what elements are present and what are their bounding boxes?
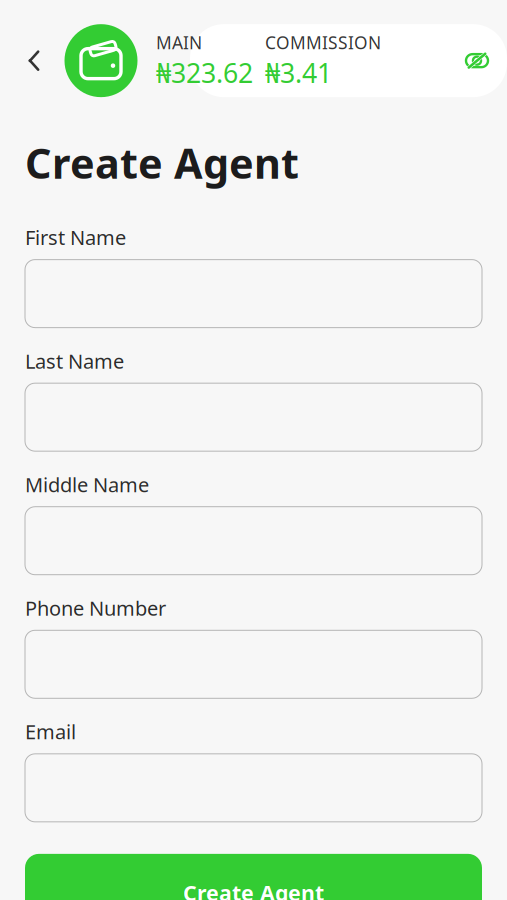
button[interactable]: Middle Name bbox=[25, 507, 482, 575]
staticText: First Name bbox=[25, 224, 126, 251]
staticText: Create Agent bbox=[25, 135, 299, 190]
staticText: MAIN bbox=[156, 31, 202, 54]
button[interactable]: Create Agent bbox=[25, 854, 482, 900]
button[interactable]: Wallet balance, hide amounts bbox=[58, 24, 507, 97]
button[interactable]: Email bbox=[25, 754, 482, 822]
staticText: COMMISSION bbox=[265, 31, 381, 54]
button[interactable]: Last Name bbox=[25, 383, 482, 451]
staticText: ₦323.62 bbox=[156, 55, 253, 90]
button[interactable]: First Name bbox=[25, 260, 482, 328]
staticText: Create Agent bbox=[183, 879, 324, 900]
staticText: Middle Name bbox=[25, 471, 149, 498]
staticText: Last Name bbox=[25, 348, 124, 374]
staticText: Email bbox=[25, 718, 76, 745]
staticText: ₦3.41 bbox=[265, 55, 332, 90]
staticText: Phone Number bbox=[25, 595, 166, 621]
button[interactable]: Phone Number bbox=[25, 630, 482, 698]
button[interactable]: Back bbox=[12, 39, 56, 83]
